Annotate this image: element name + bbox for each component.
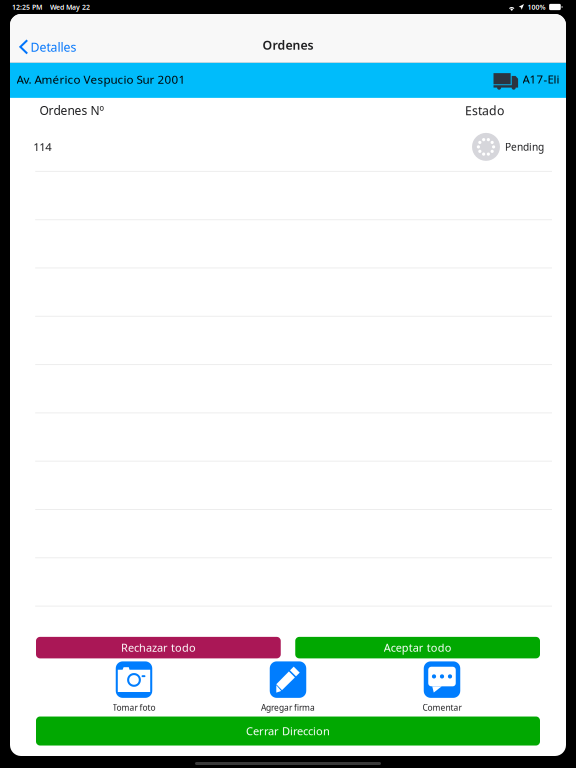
staticText: Av. Américo Vespucio Sur 2001: [16, 71, 185, 87]
staticText: Ordenes Nº: [39, 102, 104, 118]
button[interactable]: Rechazar todo: [36, 637, 281, 658]
staticText: Wed May 22: [50, 2, 90, 12]
staticText: Cerrar Direccion: [246, 723, 330, 739]
button[interactable]: Detalles: [10, 27, 86, 63]
staticText: Ordenes: [262, 36, 313, 53]
staticText: Rechazar todo: [121, 640, 196, 655]
button[interactable]: Cerrar Direccion: [36, 716, 540, 745]
staticText: Estado: [465, 102, 504, 119]
staticText: Agregar firma: [261, 702, 315, 713]
staticText: Aceptar todo: [384, 640, 452, 655]
button[interactable]: Tomar foto: [57, 661, 211, 713]
staticText: 12:25 PM: [12, 2, 42, 12]
button[interactable]: Comentar: [365, 661, 519, 713]
button[interactable]: Agregar firma: [211, 661, 365, 713]
staticText: 100%: [527, 2, 545, 12]
staticText: Pending: [505, 140, 544, 154]
staticText: Detalles: [30, 38, 76, 55]
staticText: Comentar: [422, 702, 461, 713]
staticText: A17-Eli: [522, 71, 559, 87]
staticText: Tomar foto: [112, 702, 155, 713]
button[interactable]: Aceptar todo: [295, 637, 540, 658]
staticText: 114: [33, 139, 51, 155]
